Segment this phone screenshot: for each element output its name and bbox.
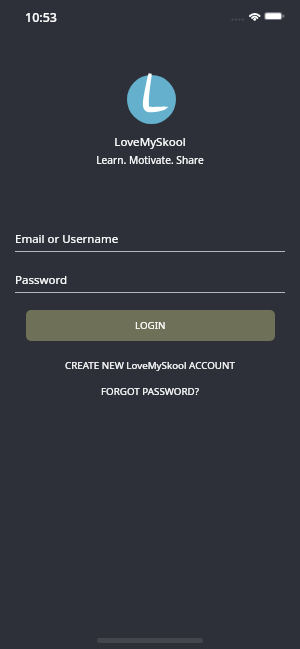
staticText: FORGOT PASSWORD? [101,385,199,398]
staticText: Learn. Motivate. Share [0,153,300,167]
button[interactable]: LOGIN [26,310,275,341]
staticText: CREATE NEW LoveMySkool ACCOUNT [65,359,235,372]
button[interactable]: FORGOT PASSWORD? [0,383,300,399]
staticText: Password [15,272,68,288]
staticText: 10:53 [25,9,58,26]
staticText: LOGIN [135,319,166,332]
staticText: Email or Username [15,231,119,247]
button[interactable]: CREATE NEW LoveMySkool ACCOUNT [0,357,300,373]
staticText: LoveMySkool [0,134,300,150]
